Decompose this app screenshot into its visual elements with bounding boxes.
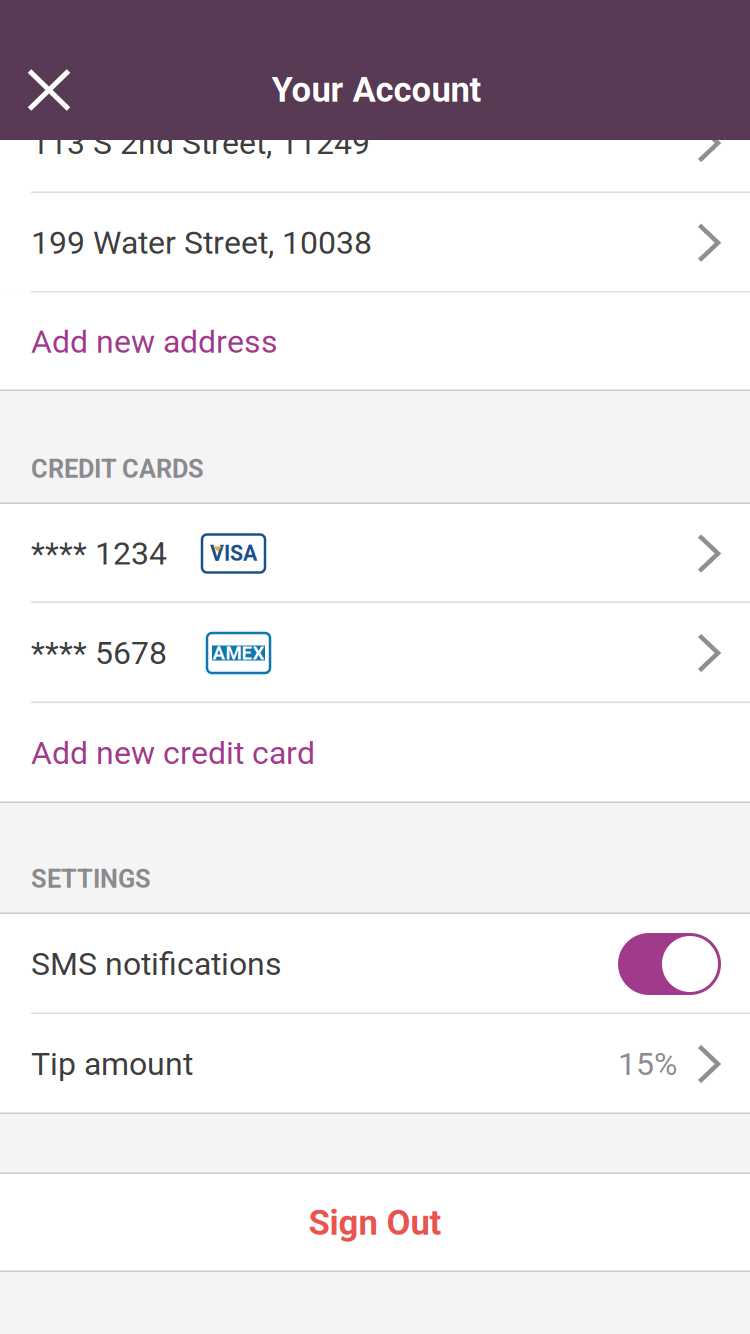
button[interactable]: 113 S 2nd Street, 11249 xyxy=(0,93,750,193)
staticText: Your Account xyxy=(271,70,481,110)
staticText: CREDIT CARDS xyxy=(31,454,204,484)
staticText: 113 S 2nd Street, 11249 xyxy=(31,124,370,162)
staticText: AMEX xyxy=(212,642,264,664)
staticText: 15% xyxy=(618,1045,677,1083)
staticText: **** 5678 xyxy=(31,634,167,672)
button[interactable]: Add new credit card xyxy=(0,703,750,803)
staticText: 199 Water Street, 10038 xyxy=(31,224,372,261)
staticText: Add new address xyxy=(31,323,278,360)
button[interactable]: 199 Water Street, 10038 xyxy=(0,193,750,292)
button[interactable]: Add new address xyxy=(0,292,750,391)
staticText: SETTINGS xyxy=(31,864,151,894)
staticText: **** 1234 xyxy=(31,535,167,572)
staticText: VISA xyxy=(210,541,257,566)
staticText: SMS notifications xyxy=(31,945,282,983)
button[interactable]: Tip amount xyxy=(0,1014,750,1114)
button[interactable]: Close xyxy=(0,40,93,140)
button[interactable]: **** 5678 xyxy=(0,603,750,703)
button[interactable]: SMS notifications xyxy=(0,914,750,1014)
staticText: Add new credit card xyxy=(31,734,315,772)
staticText: Sign Out xyxy=(308,1203,441,1243)
button[interactable]: **** 1234 xyxy=(0,504,750,603)
button[interactable]: Sign Out xyxy=(0,1174,750,1272)
staticText: Tip amount xyxy=(31,1045,193,1083)
